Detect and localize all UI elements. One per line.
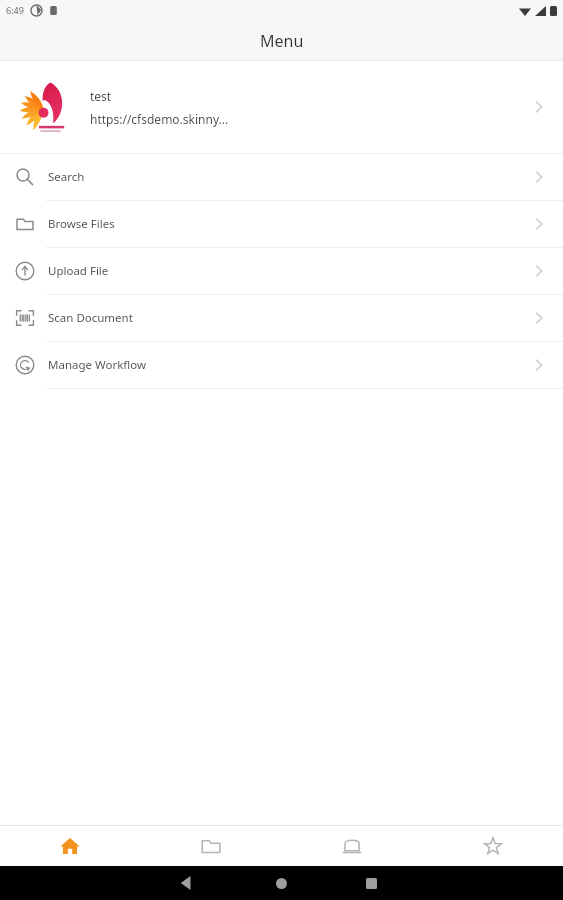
button[interactable]: Browse Files	[0, 201, 563, 247]
staticText: 6:49	[6, 4, 24, 16]
staticText: Upload File	[48, 263, 109, 279]
staticText: https://cfsdemo.skinny...	[90, 111, 229, 127]
button[interactable]: Manage Workflow	[0, 342, 563, 388]
button[interactable]: Home	[0, 826, 140, 866]
staticText: Search	[48, 169, 85, 185]
staticText: Scan Document	[48, 310, 133, 326]
button[interactable]: Favorites	[422, 826, 563, 866]
button[interactable]: Search	[0, 154, 563, 200]
button[interactable]: Upload File	[0, 248, 563, 294]
button[interactable]: test	[0, 61, 563, 153]
staticText: Menu	[260, 30, 304, 52]
button[interactable]: Scanner	[281, 826, 422, 866]
staticText: Manage Workflow	[48, 357, 146, 373]
staticText: test	[90, 88, 112, 104]
staticText: Browse Files	[48, 216, 115, 232]
button[interactable]: Files	[140, 826, 281, 866]
button[interactable]: Scan Document	[0, 295, 563, 341]
